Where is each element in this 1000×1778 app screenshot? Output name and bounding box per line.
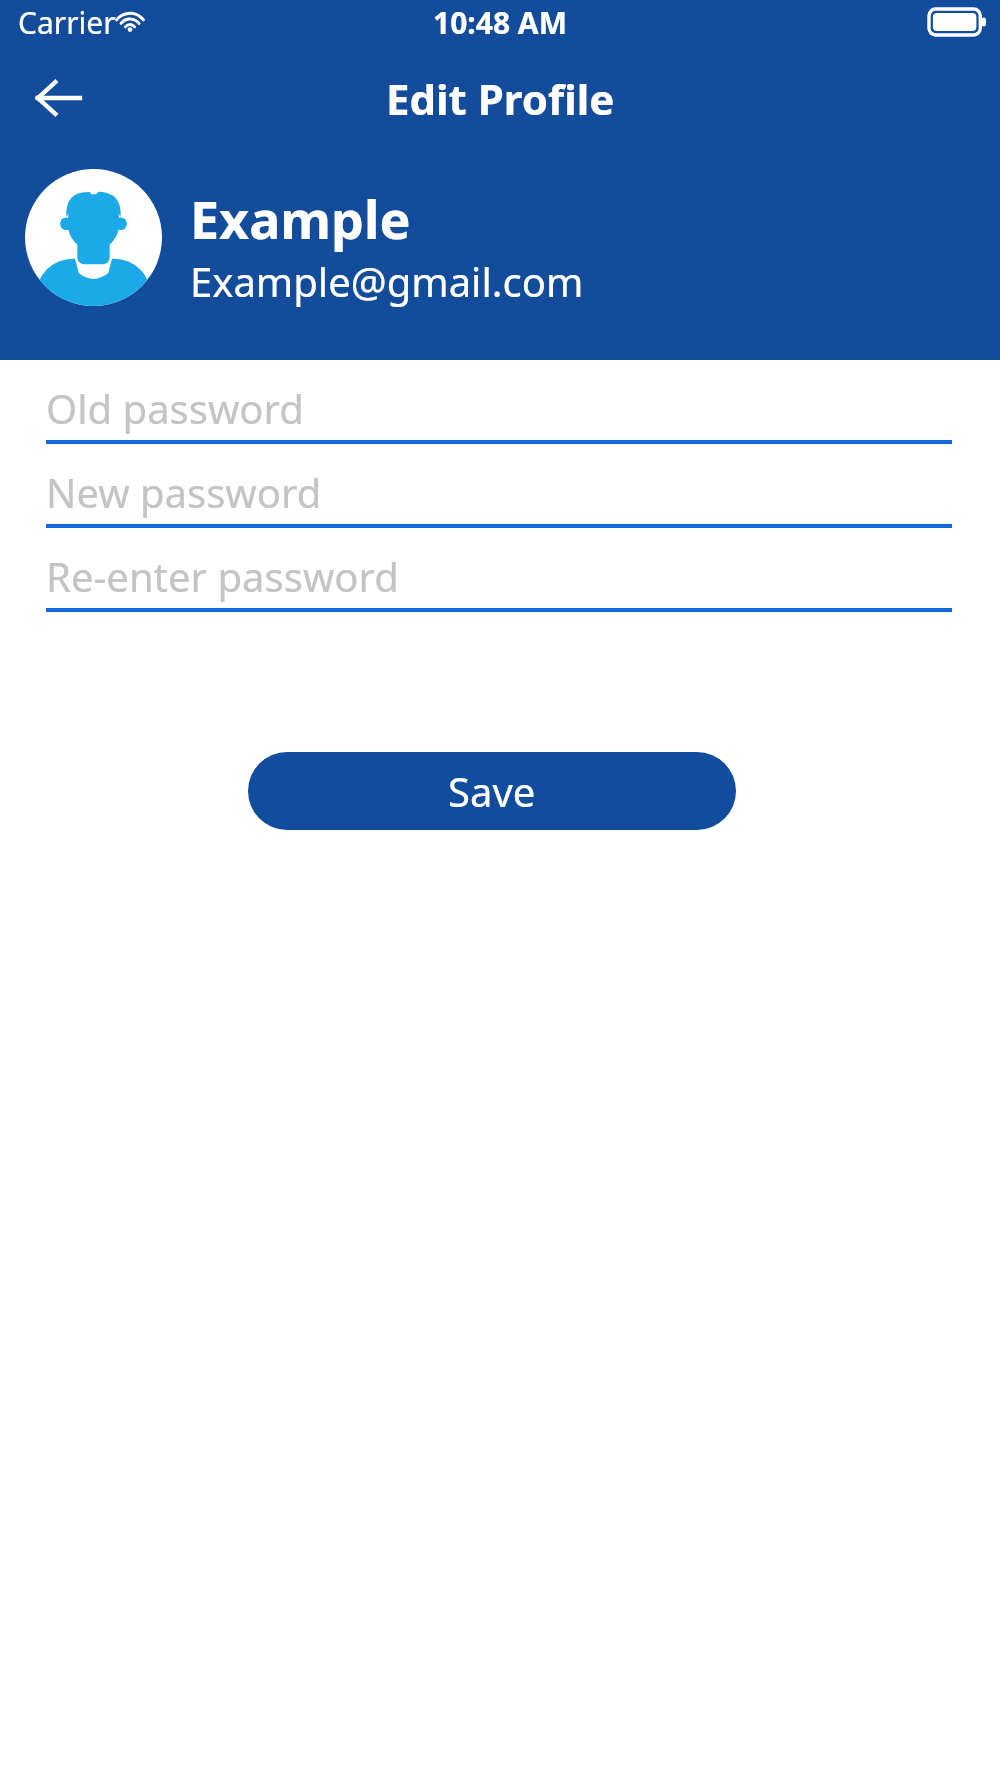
staticText: 10:48 AM [433, 2, 567, 43]
staticText: Example [190, 183, 411, 254]
staticText: New password [46, 465, 322, 519]
staticText: Carrier [18, 2, 116, 43]
staticText: Old password [46, 381, 304, 435]
button[interactable]: Re-enter password [46, 548, 952, 612]
button[interactable]: Back [14, 54, 102, 142]
button[interactable]: New password [46, 464, 952, 528]
staticText: Example@gmail.com [190, 254, 584, 308]
staticText: Re-enter password [46, 549, 399, 603]
button[interactable]: Old password [46, 380, 952, 444]
staticText: Save [448, 764, 536, 818]
staticText: Edit Profile [386, 70, 615, 127]
button[interactable]: Save [248, 752, 736, 830]
button[interactable]: Example [0, 162, 1000, 312]
